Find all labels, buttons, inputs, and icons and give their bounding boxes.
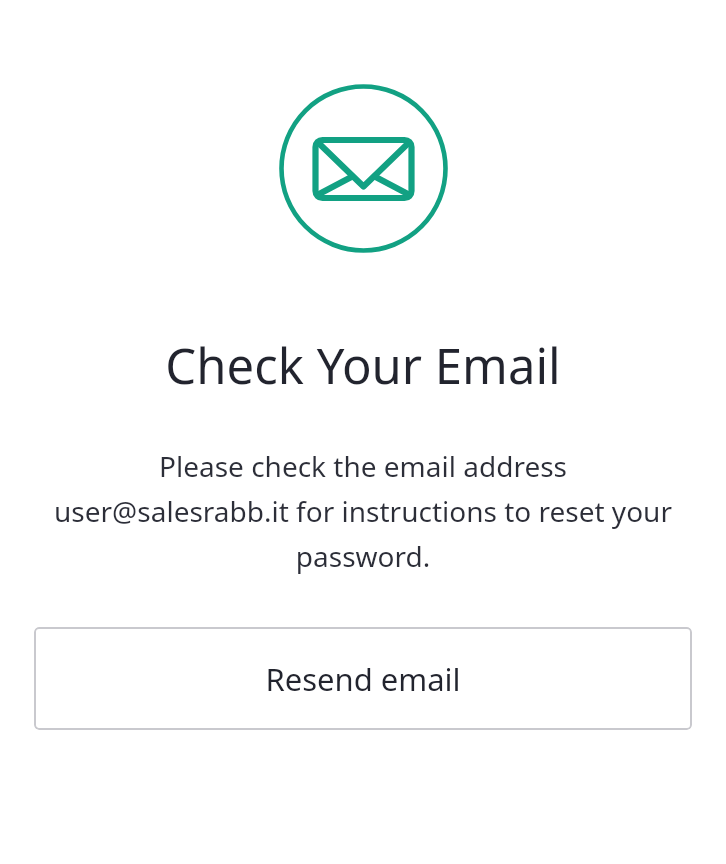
other: Email sent [278, 83, 449, 254]
button[interactable]: Resend email [34, 627, 692, 730]
staticText: Resend email [265, 658, 461, 700]
staticText: Please check the email address user@sale… [46, 447, 680, 575]
staticText: Check Your Email [0, 332, 726, 399]
